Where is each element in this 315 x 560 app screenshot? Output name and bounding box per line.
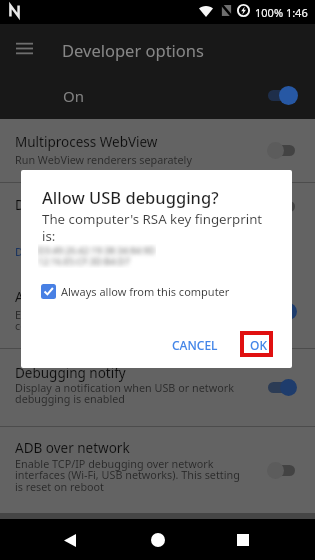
staticText: The computer's RSA key fingerprint is: [42,210,263,245]
button[interactable]: Toggle setting [260,369,304,405]
button[interactable]: OK [242,330,275,360]
button[interactable]: Home [138,520,178,560]
button[interactable] [0,183,315,228]
button[interactable] [0,349,315,426]
staticText: On [63,86,84,106]
staticText: Android debugging [15,288,139,306]
button[interactable]: Always allow from this computer [41,284,230,299]
button[interactable]: Toggle setting [260,132,304,168]
staticText: Display a notification when USB or netwo… [15,380,234,407]
staticText: OK [250,337,267,353]
staticText: Debugging notify [15,364,126,382]
button[interactable]: Open navigation menu [6,30,42,66]
staticText: Allow USB debugging? [42,186,219,208]
button[interactable]: Toggle setting [260,188,304,224]
button[interactable]: Toggle setting [260,452,304,488]
button[interactable] [0,119,315,182]
staticText: Enable TCP/IP debugging over network int… [15,456,240,495]
staticText: CANCEL [172,337,218,353]
staticText: ADB over network [15,439,130,457]
button[interactable]: On [0,72,315,119]
staticText: Run WebView renderers separately [15,152,192,167]
staticText: 100% 1:46 [255,5,308,20]
button[interactable]: Toggle setting [260,293,304,329]
button[interactable]: CANCEL [164,330,226,360]
button[interactable] [0,427,315,515]
staticText: D3:49:26:42:19:38:34:84:9D 12:16:E5:CF:3… [38,244,156,268]
staticText: Developer options [62,39,204,61]
staticText: Debugging [15,244,74,259]
button[interactable]: Recent apps [223,520,263,560]
staticText: Multiprocess WebView [15,133,158,151]
button[interactable] [0,275,315,348]
staticText: Enable debug mode when USB is connected [15,307,183,334]
staticText: Demo mode [15,196,94,214]
button[interactable]: Back [50,520,90,560]
staticText: Always allow from this computer [61,284,230,299]
